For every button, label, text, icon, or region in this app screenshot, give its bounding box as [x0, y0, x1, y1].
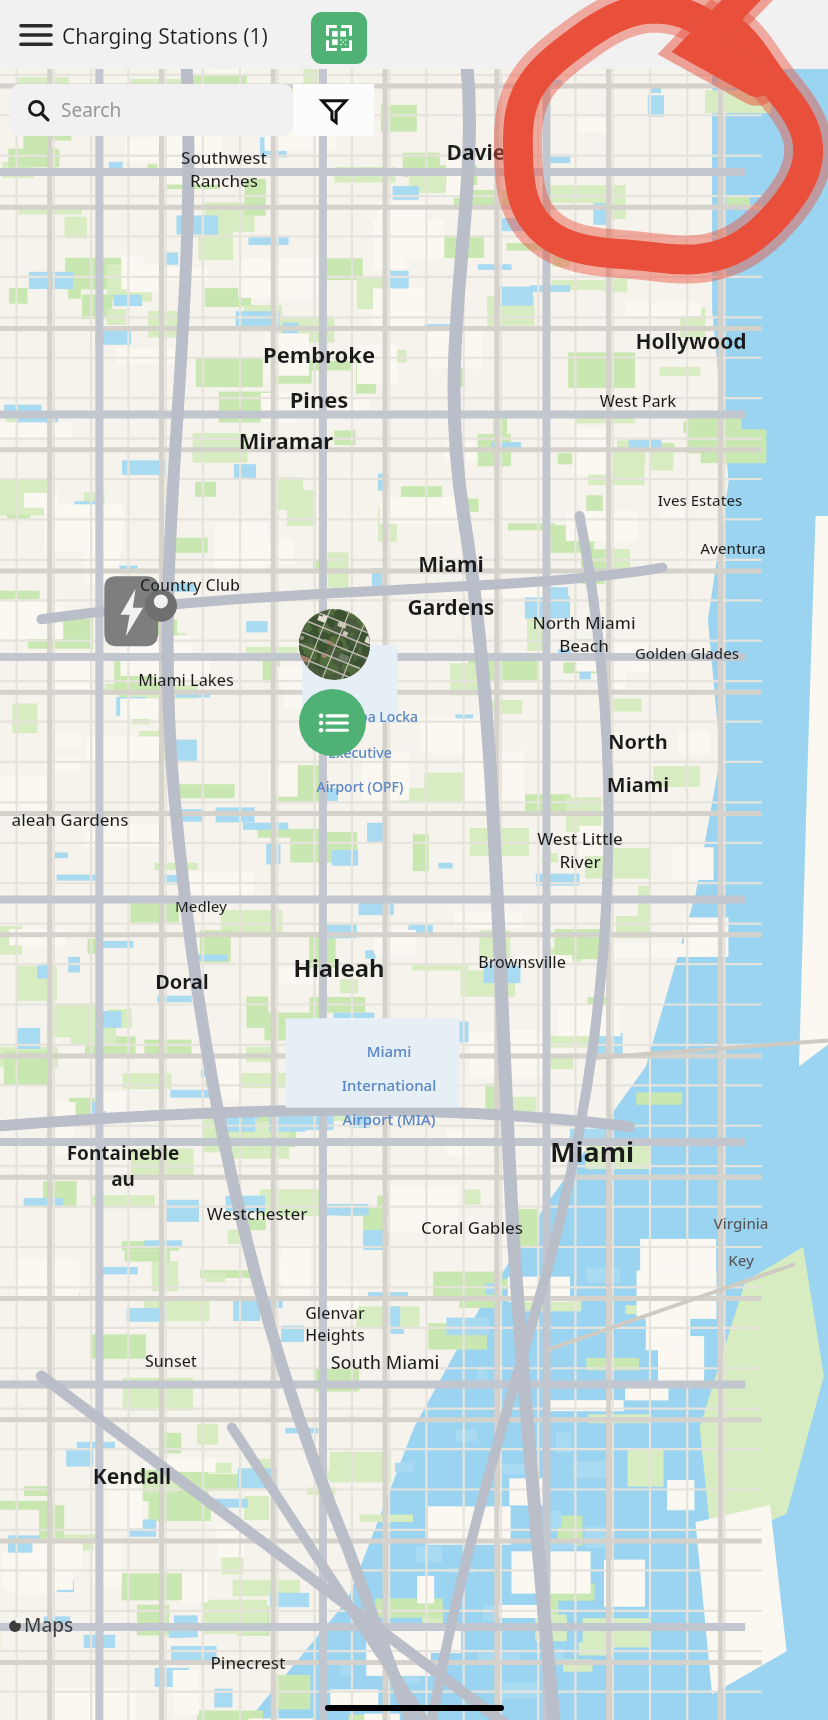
staticText: Southwest Ranches: [164, 146, 284, 192]
staticText: Pines: [259, 384, 379, 414]
staticText: Miami Lakes: [126, 669, 246, 691]
staticText: Country Club: [130, 574, 250, 596]
staticText: Miami: [329, 1041, 449, 1061]
staticText: Golden Glades: [627, 643, 747, 663]
staticText: Westchester: [197, 1202, 317, 1225]
staticText: Maps: [24, 1612, 74, 1638]
staticText: Miami: [532, 1133, 652, 1170]
staticText: International: [329, 1075, 449, 1095]
staticText: Search: [61, 97, 122, 123]
staticText: West Little River: [520, 827, 640, 873]
staticText: Miramar: [226, 425, 346, 455]
button[interactable]: Show list: [299, 689, 366, 756]
staticText: Fontainebleau: [63, 1140, 183, 1192]
staticText: Pembroke: [259, 339, 379, 369]
staticText: North: [578, 728, 698, 755]
staticText: Airport (OPF): [300, 777, 420, 796]
staticText: Hialeah: [279, 951, 399, 984]
staticText: Aventura: [673, 538, 793, 558]
staticText: Brownsville: [462, 951, 582, 973]
button[interactable]: Menu: [8, 0, 64, 69]
staticText: Hollywood: [631, 327, 751, 356]
staticText: Miami: [578, 771, 698, 798]
staticText: Sunset: [111, 1350, 231, 1372]
staticText: North Miami Beach: [524, 611, 644, 657]
staticText: Davie: [416, 138, 536, 167]
staticText: Charging Stations (1): [62, 22, 268, 51]
button[interactable]: Filter: [293, 84, 374, 136]
staticText: Key: [681, 1250, 801, 1270]
staticText: Executive: [300, 743, 420, 762]
button[interactable]: Search: [10, 84, 293, 136]
staticText: Doral: [122, 968, 242, 995]
staticText: Kendall: [72, 1462, 192, 1491]
button[interactable]: Switch map type: [299, 609, 370, 680]
staticText: Virginia: [681, 1213, 801, 1233]
staticText: South Miami: [325, 1350, 445, 1375]
staticText: Ives Estates: [640, 490, 760, 510]
staticText: Glenvar Heights: [275, 1302, 395, 1346]
staticText: Miami: [391, 550, 511, 579]
staticText: Miami-Opa Locka: [300, 707, 420, 726]
staticText: aleah Gardens: [10, 808, 130, 831]
staticText: West Park: [578, 390, 698, 412]
button[interactable]: Scan QR code: [311, 12, 367, 64]
staticText: Pinecrest: [188, 1651, 308, 1674]
staticText: Airport (MIA): [329, 1109, 449, 1129]
staticText: Gardens: [391, 593, 511, 622]
staticText: Medley: [141, 896, 261, 916]
staticText: Coral Gables: [412, 1216, 532, 1239]
